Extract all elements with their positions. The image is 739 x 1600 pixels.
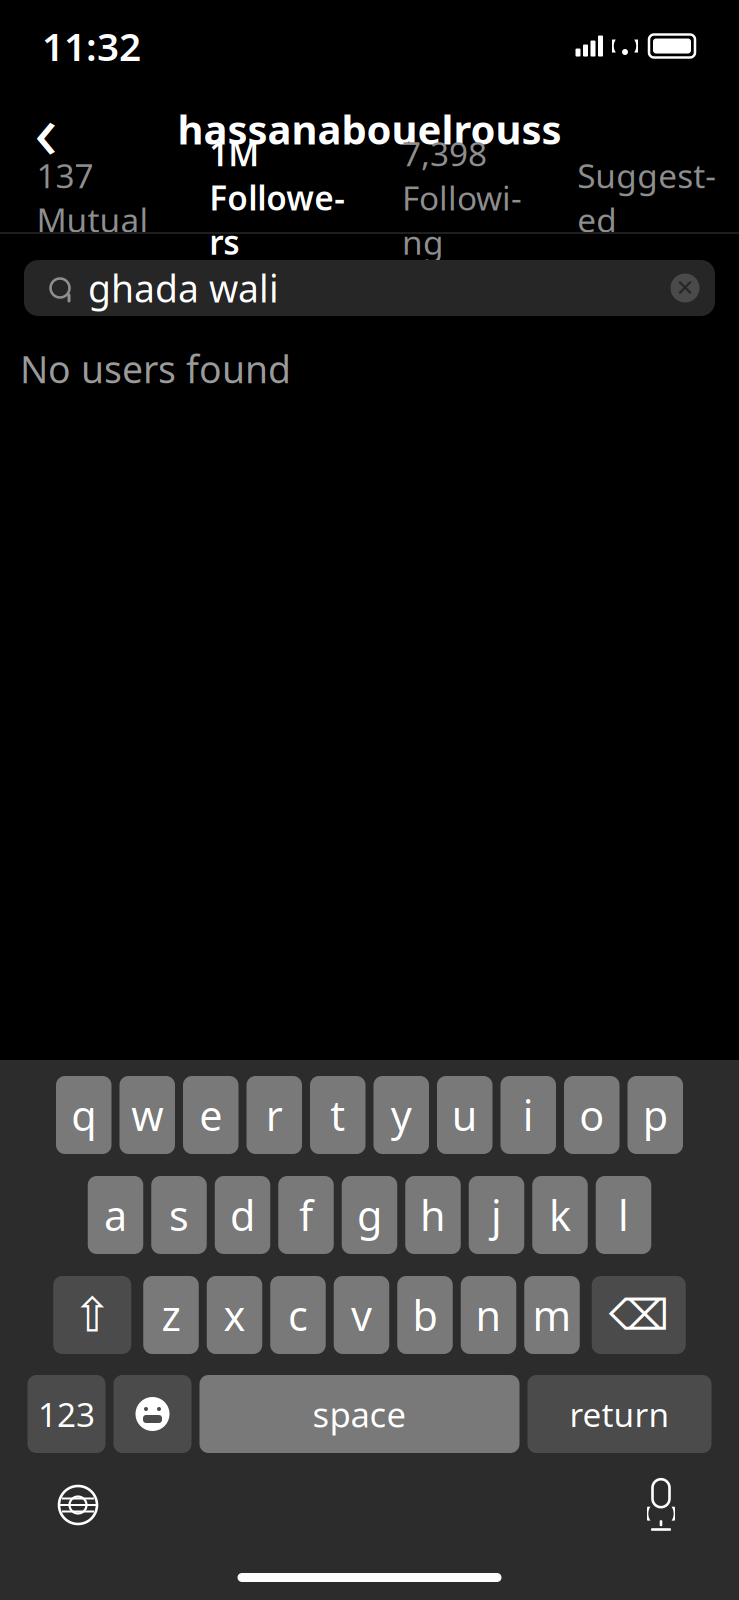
staticText: return xyxy=(569,1392,669,1436)
staticText: h xyxy=(420,1188,446,1242)
button[interactable]: Shift xyxy=(53,1276,131,1354)
staticText: g xyxy=(357,1188,382,1242)
button[interactable]: t xyxy=(310,1076,365,1154)
button[interactable]: 7,398 Following xyxy=(369,166,554,232)
button[interactable]: x xyxy=(207,1276,262,1354)
staticText: j xyxy=(491,1188,502,1242)
staticText: q xyxy=(71,1088,96,1142)
staticText: c xyxy=(288,1288,308,1342)
staticText: f xyxy=(299,1188,313,1242)
button[interactable]: c xyxy=(270,1276,326,1354)
button[interactable]: p xyxy=(627,1076,683,1154)
staticText: ghada wali xyxy=(88,263,279,313)
button[interactable]: Delete xyxy=(592,1276,686,1354)
button[interactable]: k xyxy=(532,1176,588,1254)
staticText: z xyxy=(161,1288,180,1342)
staticText: i xyxy=(523,1088,534,1142)
button[interactable]: v xyxy=(334,1276,389,1354)
staticText: p xyxy=(643,1088,668,1142)
staticText: space xyxy=(312,1391,406,1437)
button[interactable]: e xyxy=(183,1076,238,1154)
staticText: ⇧ xyxy=(72,1288,112,1342)
staticText: u xyxy=(452,1088,478,1142)
staticText: 11:32 xyxy=(42,20,141,72)
button[interactable]: f xyxy=(278,1176,334,1254)
button[interactable]: o xyxy=(564,1076,619,1154)
staticText: Suggested xyxy=(577,153,716,242)
button[interactable]: 123 xyxy=(27,1375,105,1453)
staticText: 1M Followers xyxy=(209,131,345,264)
staticText: t xyxy=(330,1088,345,1142)
staticText: b xyxy=(412,1288,437,1342)
staticText: o xyxy=(579,1088,604,1142)
staticText: r xyxy=(266,1088,283,1142)
button[interactable]: u xyxy=(437,1076,492,1154)
button[interactable]: space xyxy=(199,1375,519,1453)
button[interactable]: g xyxy=(342,1176,397,1254)
button[interactable]: Back xyxy=(10,93,82,165)
button[interactable]: q xyxy=(56,1076,111,1154)
staticText: ‹ xyxy=(34,78,58,180)
staticText: hassanabouelrouss xyxy=(177,102,561,155)
staticText: 123 xyxy=(38,1392,95,1436)
staticText: s xyxy=(169,1188,189,1242)
button[interactable]: j xyxy=(469,1176,524,1254)
button[interactable]: w xyxy=(119,1076,175,1154)
button[interactable]: d xyxy=(215,1176,270,1254)
button[interactable]: m xyxy=(524,1276,580,1354)
button[interactable]: Suggested xyxy=(554,166,739,232)
staticText: a xyxy=(104,1188,127,1242)
staticText: x xyxy=(223,1288,245,1342)
button[interactable]: r xyxy=(246,1076,302,1154)
button[interactable]: Clear text xyxy=(663,266,707,310)
button[interactable]: i xyxy=(500,1076,556,1154)
button[interactable]: 1M Followers xyxy=(185,166,370,232)
button[interactable]: 137 Mutual xyxy=(0,166,185,232)
button[interactable]: a xyxy=(88,1176,143,1254)
staticText: 137 Mutual xyxy=(36,153,148,242)
button[interactable]: l xyxy=(596,1176,651,1254)
staticText: y xyxy=(391,1088,412,1142)
staticText: e xyxy=(199,1088,222,1142)
staticText: w xyxy=(131,1088,163,1142)
staticText: d xyxy=(230,1188,255,1242)
staticText: k xyxy=(549,1188,571,1242)
button[interactable]: return xyxy=(527,1375,711,1453)
button[interactable]: b xyxy=(397,1276,453,1354)
button[interactable]: y xyxy=(373,1076,429,1154)
staticText: m xyxy=(532,1288,571,1342)
staticText: n xyxy=(475,1288,501,1342)
staticText: ✕ xyxy=(675,275,694,301)
button[interactable]: h xyxy=(405,1176,461,1254)
button[interactable]: n xyxy=(461,1276,516,1354)
staticText: ⌫ xyxy=(609,1291,669,1339)
button[interactable]: Emoji xyxy=(113,1375,191,1453)
staticText: l xyxy=(618,1188,629,1242)
button[interactable]: z xyxy=(143,1276,199,1354)
button[interactable]: Dictation xyxy=(639,1477,683,1533)
staticText: No users found xyxy=(20,344,291,394)
button[interactable]: s xyxy=(151,1176,207,1254)
button[interactable]: Next keyboard xyxy=(56,1483,100,1527)
staticText: v xyxy=(351,1288,372,1342)
staticText: 7,398 Following xyxy=(402,131,522,264)
